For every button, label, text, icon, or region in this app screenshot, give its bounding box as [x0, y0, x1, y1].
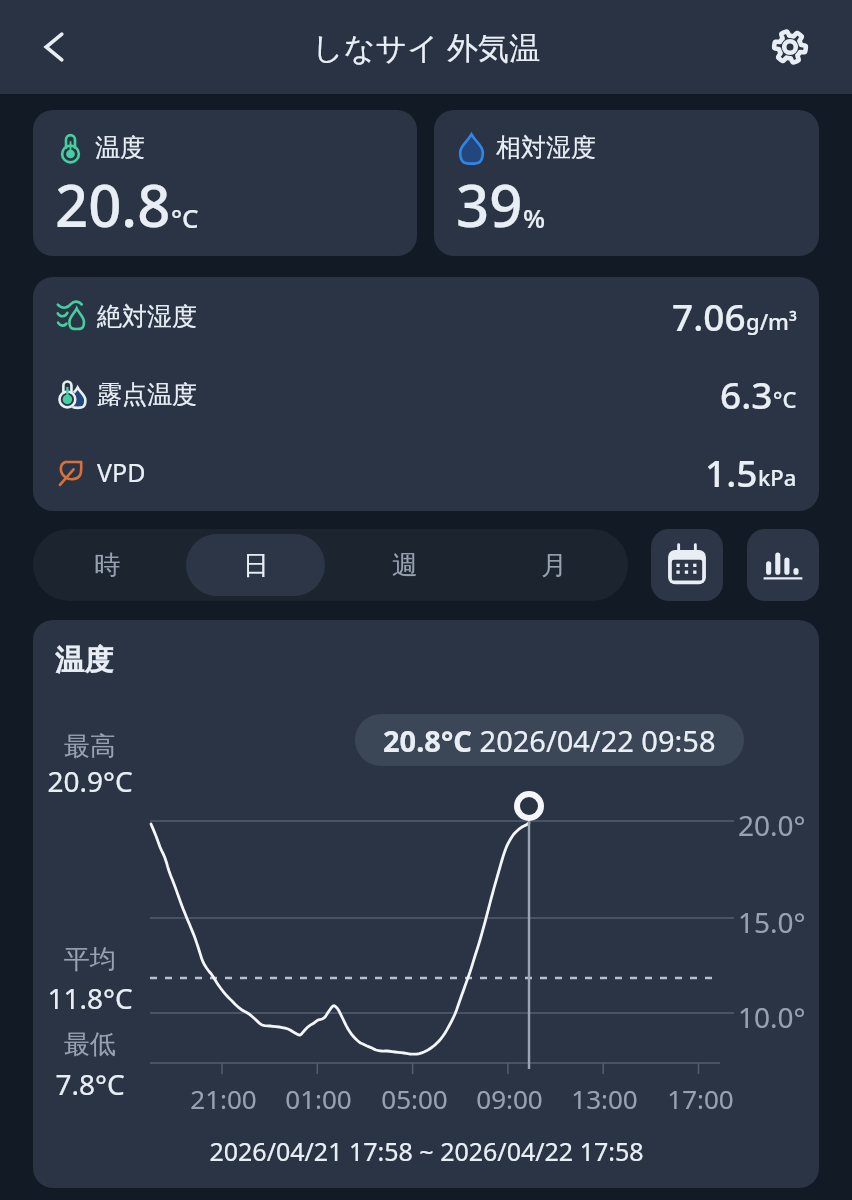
staticText: しなサイ 外気温 [312, 26, 540, 68]
button[interactable]: 温度 [33, 110, 417, 256]
staticText: °C [773, 384, 797, 414]
staticText: 10.0° [738, 998, 806, 1036]
staticText: 温度 [55, 642, 113, 679]
button[interactable]: 絶対湿度 [33, 277, 819, 355]
staticText: 13:00 [571, 1081, 638, 1116]
staticText: 20.8 [55, 165, 171, 244]
button[interactable]: Settings [762, 19, 818, 75]
staticText: 6.3 [720, 369, 773, 419]
button[interactable]: VPD [33, 433, 819, 511]
staticText: 05:00 [381, 1081, 448, 1116]
staticText: 平均 [64, 943, 116, 976]
staticText: 露点温度 [97, 379, 197, 410]
button[interactable]: 週 [335, 534, 474, 596]
staticText: 1.5 [705, 447, 758, 497]
button[interactable]: 日 [186, 534, 325, 596]
staticText: 20.9°C [47, 762, 133, 800]
staticText: % [523, 200, 546, 235]
staticText: 週 [392, 549, 418, 582]
staticText: 相対湿度 [496, 132, 596, 163]
staticText: 7.06 [672, 291, 746, 341]
button[interactable]: Calendar [651, 529, 723, 601]
staticText: 温度 [95, 132, 145, 163]
staticText: 月 [541, 549, 567, 582]
button[interactable]: 時 [38, 534, 176, 596]
staticText: 15.0° [738, 903, 806, 941]
staticText: °C [171, 200, 199, 235]
staticText: 09:00 [476, 1081, 543, 1116]
staticText: 絶対湿度 [97, 301, 197, 332]
staticText: 20.0° [738, 806, 806, 844]
staticText: 時 [94, 549, 120, 582]
staticText: VPD [97, 455, 146, 489]
staticText: 21:00 [190, 1081, 257, 1116]
button[interactable]: Back [26, 19, 82, 75]
staticText: 最高 [64, 730, 116, 763]
staticText: kPa [758, 462, 797, 492]
staticText: 01:00 [285, 1081, 352, 1116]
button[interactable]: Chart [747, 529, 819, 601]
button[interactable]: 露点温度 [33, 355, 819, 433]
staticText: g/m³ [746, 306, 797, 336]
staticText: 20.8°C [383, 721, 472, 760]
staticText: 日 [243, 549, 269, 582]
staticText: 39 [456, 165, 523, 244]
staticText: 2026/04/22 09:58 [472, 721, 716, 760]
staticText: 11.8°C [47, 979, 133, 1017]
staticText: 最低 [64, 1028, 116, 1061]
staticText: 7.8°C [55, 1065, 125, 1103]
button[interactable]: 月 [484, 534, 623, 596]
staticText: 2026/04/21 17:58 ~ 2026/04/22 17:58 [209, 1134, 644, 1168]
button[interactable]: 相対湿度 [434, 110, 819, 256]
staticText: 17:00 [667, 1081, 734, 1116]
